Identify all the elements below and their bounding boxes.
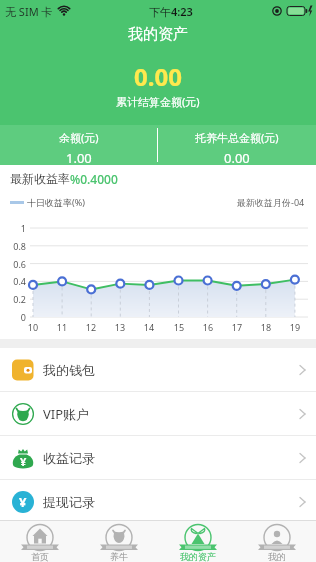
staticText: 0.8: [0, 240, 26, 252]
staticText: 我的: [268, 551, 286, 562]
button[interactable]: 首页: [0, 521, 79, 562]
staticText: 养牛: [110, 551, 128, 562]
staticText: 收益记录: [43, 450, 95, 466]
staticText: 0.00: [224, 149, 250, 165]
staticText: 13: [110, 321, 130, 333]
staticText: 最新收益月份-04: [237, 196, 305, 208]
staticText: 17: [227, 321, 247, 333]
button[interactable]: 托养牛总金额(元): [158, 125, 316, 165]
staticText: 11: [52, 321, 72, 333]
staticText: 我的资产: [180, 551, 216, 562]
staticText: 0.00: [134, 60, 182, 93]
staticText: 下午4:23: [149, 4, 193, 19]
button[interactable]: 养牛: [79, 521, 158, 562]
staticText: 1.00: [66, 149, 92, 165]
button[interactable]: 我的钱包: [0, 348, 316, 392]
staticText: 0.4: [0, 275, 26, 287]
staticText: 10: [23, 321, 43, 333]
staticText: 我的资产: [128, 25, 188, 44]
staticText: 15: [169, 321, 189, 333]
staticText: 16: [198, 321, 218, 333]
staticText: ¥: [19, 493, 27, 511]
staticText: 十日收益率(%): [27, 196, 85, 208]
staticText: 0: [0, 311, 26, 323]
staticText: VIP账户: [43, 405, 90, 423]
button[interactable]: ¥: [0, 436, 316, 480]
staticText: %0.4000: [70, 171, 118, 187]
button[interactable]: VIP账户: [0, 392, 316, 436]
button[interactable]: ¥: [0, 480, 316, 524]
staticText: 无 SIM 卡: [5, 4, 53, 19]
staticText: 首页: [31, 551, 49, 562]
staticText: 余额(元): [59, 130, 99, 145]
staticText: 托养牛总金额(元): [195, 130, 279, 145]
staticText: 19: [285, 321, 305, 333]
button[interactable]: 余额(元): [0, 125, 157, 165]
staticText: 12: [81, 321, 101, 333]
staticText: 18: [256, 321, 276, 333]
staticText: 累计结算金额(元): [116, 94, 200, 109]
staticText: 0.2: [0, 293, 26, 305]
button[interactable]: 我的: [237, 521, 316, 562]
staticText: 1: [0, 222, 26, 234]
staticText: 提现记录: [43, 494, 95, 510]
staticText: 0.6: [0, 258, 26, 270]
staticText: 最新收益率: [10, 171, 70, 186]
staticText: ¥: [20, 454, 27, 469]
staticText: 我的钱包: [43, 362, 95, 378]
button[interactable]: 我的资产: [158, 521, 237, 562]
staticText: 14: [139, 321, 159, 333]
